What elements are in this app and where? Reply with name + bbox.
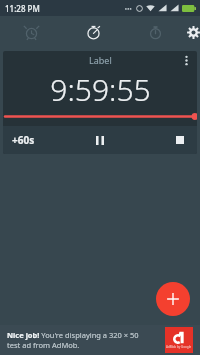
- button[interactable]: Alarm: [0, 16, 62, 48]
- button[interactable]: Nice job! You're displaying a 320 × 50 t…: [0, 325, 200, 355]
- staticText: Nice job! You're displaying a 320 × 50 t…: [7, 330, 139, 350]
- staticText: AdMob by Google: [166, 345, 192, 349]
- staticText: 11:28 PM: [5, 3, 40, 14]
- button[interactable]: More options: [175, 51, 197, 69]
- button[interactable]: Timer: [62, 16, 124, 48]
- staticText: Label: [89, 54, 112, 66]
- button[interactable]: +60s: [3, 126, 67, 154]
- button[interactable]: Pause: [67, 126, 132, 154]
- button[interactable]: Stopwatch: [124, 16, 186, 48]
- button[interactable]: Stop: [132, 126, 197, 154]
- button[interactable]: Settings: [186, 16, 200, 48]
- button[interactable]: Add timer: [156, 282, 190, 316]
- staticText: +60s: [12, 133, 35, 147]
- staticText: 9:59:55: [50, 69, 151, 105]
